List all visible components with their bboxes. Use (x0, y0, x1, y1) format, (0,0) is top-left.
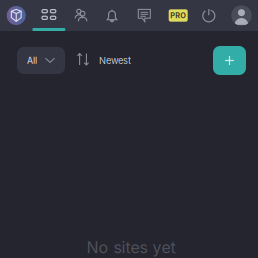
staticText: Newest (99, 55, 131, 66)
button[interactable]: Workspace (0, 0, 32, 31)
button[interactable]: Account (225, 0, 258, 31)
button[interactable]: All (17, 47, 65, 74)
staticText: All (27, 55, 37, 66)
button[interactable]: Sites (32, 0, 65, 31)
staticText: No sites yet (86, 238, 175, 257)
staticText: PRO (170, 11, 186, 20)
button[interactable]: Team (65, 0, 96, 31)
button[interactable]: Newest (65, 47, 143, 74)
button[interactable]: Messages (127, 0, 161, 31)
button[interactable]: PRO (161, 0, 193, 31)
button[interactable]: Sign out (193, 0, 225, 31)
button[interactable]: Add site (213, 46, 246, 75)
button[interactable]: Notifications (96, 0, 127, 31)
